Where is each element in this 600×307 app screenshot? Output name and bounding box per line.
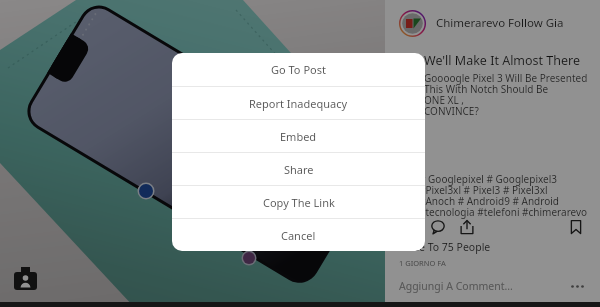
staticText: # Googlepixel # Googlepixel3 #Pixel3xl #… [419, 172, 588, 219]
staticText: Embed [280, 129, 317, 144]
staticText: Aggiungi A Comment... [399, 279, 513, 293]
button[interactable]: Report Inadequacy [172, 87, 425, 119]
staticText: Go To Post [271, 62, 326, 77]
button[interactable]: Embed [172, 120, 425, 152]
button[interactable]: Cancel [172, 219, 425, 251]
staticText: Copy The Link [263, 195, 335, 210]
staticText: 1 GIORNO FA [399, 258, 446, 268]
button[interactable]: Chimerarevo Follow Gia [399, 0, 600, 46]
button[interactable]: More options [568, 277, 586, 295]
button[interactable]: Share [457, 217, 477, 237]
button[interactable]: Comment [428, 217, 448, 237]
staticText: Cancel [281, 228, 316, 243]
button[interactable]: Save [566, 217, 586, 237]
staticText: Piace To 75 People [399, 240, 491, 254]
staticText: Share [284, 162, 314, 177]
button[interactable]: Go To Post [172, 53, 425, 86]
staticText: Chimerarevo Follow Gia [436, 15, 564, 31]
staticText: Goooogle Pixel 3 Will Be Presented This … [424, 71, 588, 118]
button[interactable]: Copy The Link [172, 186, 425, 218]
button[interactable]: Like [399, 217, 419, 237]
staticText: Report Inadequacy [249, 96, 348, 111]
staticText: We'll Make It Almost There [424, 52, 581, 69]
button[interactable]: Share [172, 153, 425, 185]
